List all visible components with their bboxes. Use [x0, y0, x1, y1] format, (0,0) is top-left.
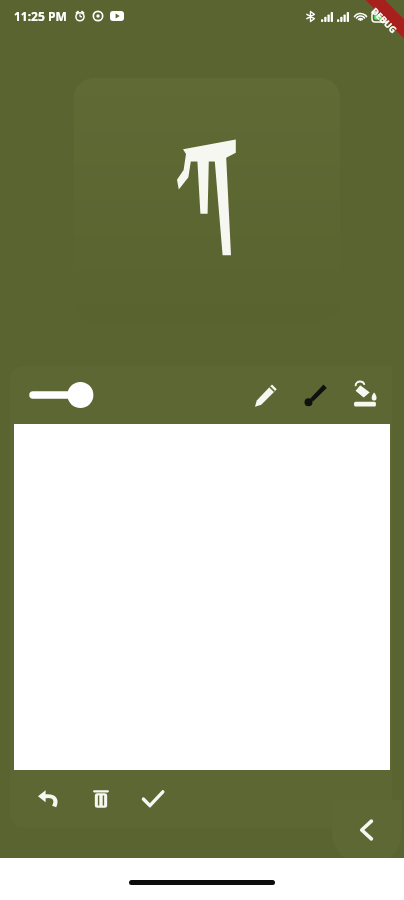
button[interactable]: Fill color	[344, 374, 386, 416]
button[interactable]: Confirm	[132, 778, 174, 820]
button[interactable]: Pencil tool	[244, 374, 286, 416]
button[interactable]: Stroke width slider	[30, 377, 102, 413]
button[interactable]: Undo	[28, 778, 70, 820]
staticText: DEBUG	[369, 5, 400, 35]
button[interactable]	[74, 78, 340, 322]
button[interactable]: Delete drawing	[80, 778, 122, 820]
button[interactable]: Brush tool	[294, 374, 336, 416]
button[interactable]: Back	[345, 808, 389, 852]
staticText: 11:25 PM	[14, 8, 67, 24]
